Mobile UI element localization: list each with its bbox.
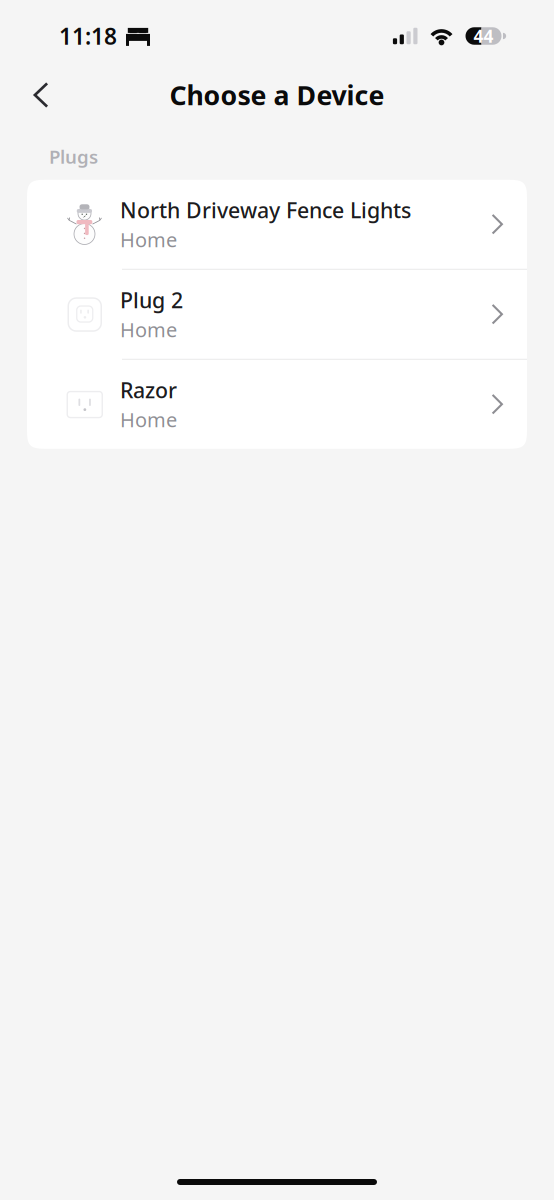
staticText: Home	[120, 406, 177, 433]
staticText: 11:18	[59, 21, 117, 51]
staticText: Choose a Device	[169, 77, 384, 113]
staticText: 44	[473, 24, 493, 47]
staticText: Plug 2	[120, 286, 183, 314]
staticText: North Driveway Fence Lights	[120, 196, 411, 224]
staticText: Razor	[120, 376, 177, 404]
button[interactable]: Back	[19, 73, 63, 117]
staticText: Home	[120, 226, 177, 253]
staticText: Plugs	[49, 144, 98, 169]
button[interactable]: North Driveway Fence Lights	[27, 180, 527, 269]
button[interactable]: Razor	[27, 360, 527, 449]
staticText: Home	[120, 316, 177, 343]
button[interactable]: Plug 2	[27, 270, 527, 359]
